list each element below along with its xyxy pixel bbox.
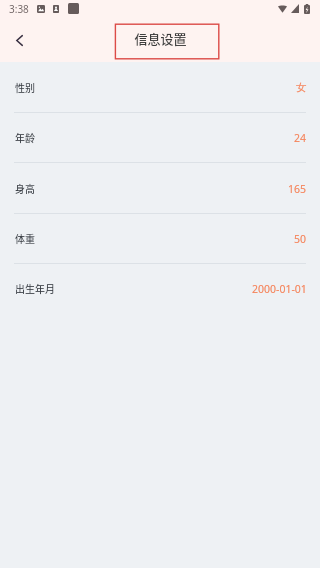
staticText: 身高 xyxy=(15,181,35,195)
staticText: 女 xyxy=(296,81,307,94)
button[interactable]: 性别 xyxy=(0,62,320,113)
staticText: 出生年月 xyxy=(15,281,55,295)
button[interactable]: 体重 xyxy=(0,214,320,264)
button[interactable]: 年龄 xyxy=(0,113,320,163)
staticText: 2000-01-01 xyxy=(252,282,307,296)
staticText: 3:38 xyxy=(9,2,29,16)
staticText: 24 xyxy=(294,131,307,145)
staticText: 年龄 xyxy=(15,130,35,144)
staticText: 体重 xyxy=(15,231,35,245)
staticText: 50 xyxy=(294,232,307,246)
button[interactable]: 身高 xyxy=(0,163,320,214)
staticText: 性别 xyxy=(15,80,35,94)
staticText: 信息设置 xyxy=(134,29,187,48)
button[interactable]: Back xyxy=(7,28,31,52)
button[interactable]: 出生年月 xyxy=(0,264,320,314)
staticText: 165 xyxy=(288,182,307,196)
